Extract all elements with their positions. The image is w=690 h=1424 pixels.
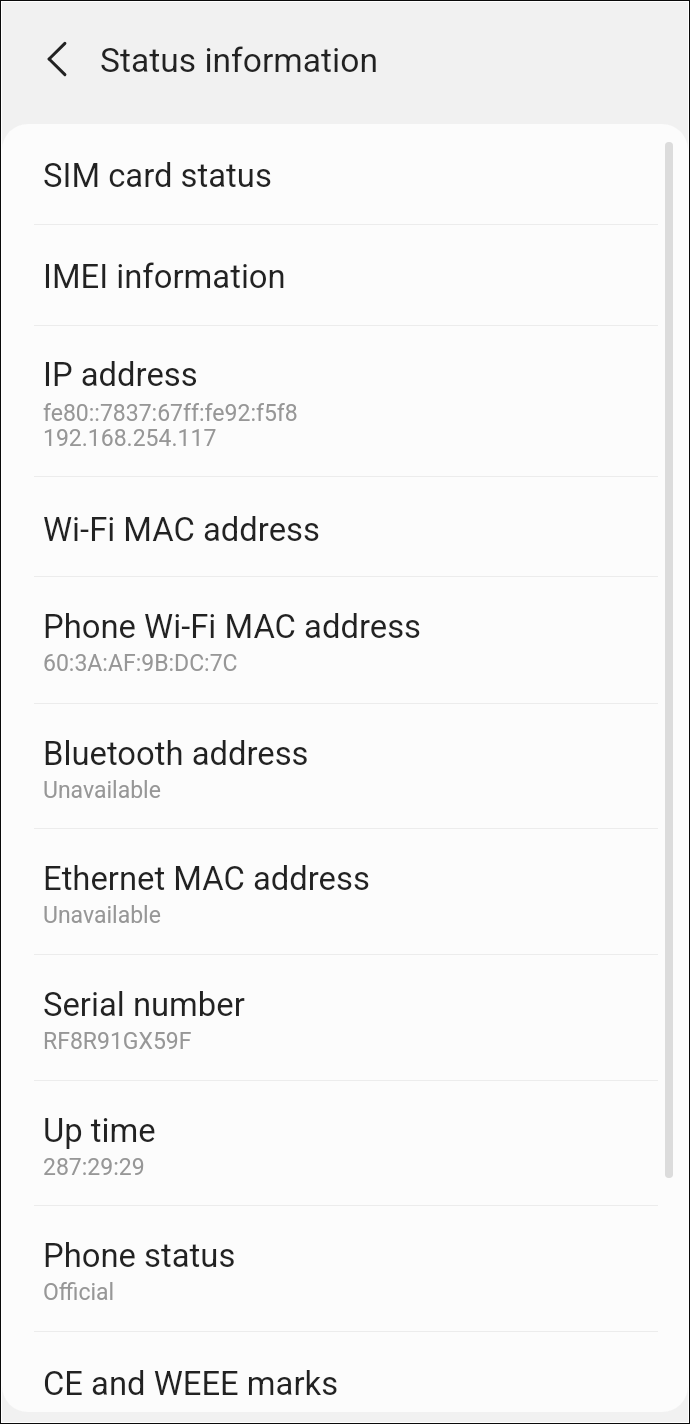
button[interactable]: Phone Wi-Fi MAC address: [2, 577, 688, 703]
staticText: Unavailable: [43, 902, 161, 929]
staticText: 192.168.254.117: [43, 425, 217, 452]
staticText: Unavailable: [43, 777, 161, 804]
staticText: IP address: [43, 356, 198, 394]
staticText: Up time: [43, 1112, 156, 1150]
button[interactable]: Ethernet MAC address: [2, 829, 688, 954]
button[interactable]: IMEI information: [2, 225, 688, 325]
staticText: Serial number: [43, 986, 245, 1024]
staticText: 60:3A:AF:9B:DC:7C: [43, 650, 238, 677]
button[interactable]: Navigate up: [31, 33, 83, 85]
staticText: 287:29:29: [43, 1154, 145, 1181]
staticText: Phone status: [43, 1237, 236, 1275]
button[interactable]: Wi-Fi MAC address: [2, 477, 688, 576]
button[interactable]: IP address: [2, 326, 688, 476]
staticText: Wi-Fi MAC address: [43, 511, 320, 549]
button[interactable]: SIM card status: [2, 124, 688, 224]
staticText: RF8R91GX59F: [43, 1028, 192, 1055]
staticText: Phone Wi-Fi MAC address: [43, 608, 421, 646]
staticText: Ethernet MAC address: [43, 860, 370, 898]
staticText: IMEI information: [43, 258, 286, 296]
button[interactable]: Up time: [2, 1081, 688, 1205]
staticText: Official: [43, 1279, 115, 1306]
button[interactable]: CE and WEEE marks: [2, 1332, 688, 1412]
button[interactable]: Phone status: [2, 1206, 688, 1331]
button[interactable]: Bluetooth address: [2, 704, 688, 828]
button[interactable]: Serial number: [2, 955, 688, 1080]
staticText: SIM card status: [43, 157, 272, 195]
staticText: fe80::7837:67ff:fe92:f5f8: [43, 400, 298, 427]
staticText: Bluetooth address: [43, 735, 309, 773]
staticText: Status information: [100, 41, 378, 80]
staticText: CE and WEEE marks: [43, 1365, 339, 1403]
